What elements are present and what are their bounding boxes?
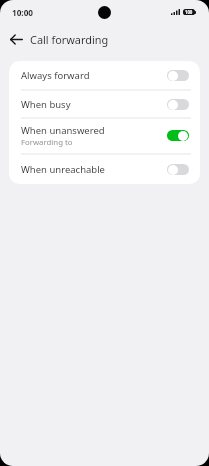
button[interactable]: When busy: [9, 91, 200, 117]
button[interactable]: Off: [167, 70, 189, 81]
staticText: When unreachable: [21, 163, 105, 176]
button[interactable]: Back: [2, 25, 30, 53]
staticText: 100: [185, 9, 193, 15]
button[interactable]: Off: [167, 99, 189, 110]
staticText: When busy: [21, 98, 71, 111]
staticText: Always forward: [21, 69, 90, 82]
button[interactable]: Off: [167, 164, 189, 175]
button[interactable]: When unanswered: [9, 119, 200, 153]
staticText: Call forwarding: [30, 32, 109, 47]
button[interactable]: On: [167, 130, 189, 141]
button[interactable]: Always forward: [9, 61, 200, 89]
button[interactable]: When unreachable: [9, 155, 200, 184]
staticText: Forwarding to: [21, 137, 73, 148]
staticText: 10:00: [12, 7, 34, 18]
staticText: When unanswered: [21, 124, 105, 137]
